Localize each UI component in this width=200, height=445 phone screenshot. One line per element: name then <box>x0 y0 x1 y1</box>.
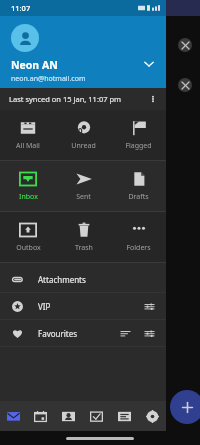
staticText: Sent <box>76 192 91 202</box>
staticText: Attachments <box>38 274 86 285</box>
button[interactable]: Filter options <box>141 325 157 341</box>
staticText: Trash <box>75 243 93 253</box>
button[interactable]: Neon AN <box>0 16 166 88</box>
button[interactable]: Calendar <box>27 401 54 431</box>
button[interactable]: Attachments <box>0 266 166 292</box>
button[interactable]: Sort <box>117 325 133 341</box>
button[interactable]: Settings <box>138 401 166 431</box>
button[interactable]: Unread <box>56 110 111 160</box>
button[interactable]: Tasks <box>82 401 110 431</box>
button[interactable]: Contacts <box>54 401 82 431</box>
staticText: Folders <box>126 243 151 253</box>
staticText: neon.an@hotmail.com <box>11 74 86 84</box>
button[interactable]: Switch account <box>138 53 160 75</box>
button[interactable]: Compose <box>170 390 200 424</box>
staticText: Inbox <box>19 192 38 202</box>
button[interactable]: Dismiss <box>178 38 192 52</box>
button[interactable]: Trash <box>56 212 111 262</box>
staticText: Neon AN <box>11 58 58 72</box>
button[interactable]: Drafts <box>111 161 166 211</box>
button[interactable]: Folders <box>111 212 166 262</box>
staticText: Drafts <box>128 192 149 202</box>
staticText: All Mail <box>16 141 40 151</box>
button[interactable]: Filter options <box>141 298 157 314</box>
staticText: Flagged <box>125 141 152 151</box>
button[interactable]: All Mail <box>0 110 56 160</box>
staticText: 11:07 <box>11 3 31 13</box>
staticText: Unread <box>71 141 96 151</box>
button[interactable]: Sent <box>56 161 111 211</box>
button[interactable]: Dismiss <box>178 78 192 92</box>
staticText: VIP <box>38 301 51 312</box>
button[interactable]: VIP <box>0 293 166 319</box>
button[interactable]: Flagged <box>111 110 166 160</box>
button[interactable]: Inbox <box>0 161 56 211</box>
staticText: 0 <box>78 125 83 136</box>
button[interactable]: More options <box>144 90 162 108</box>
staticText: Outbox <box>16 243 41 253</box>
staticText: Favourites <box>38 328 78 339</box>
staticText: Last synced on 15 Jan, 11:07 pm <box>9 94 122 104</box>
button[interactable]: Outbox <box>0 212 56 262</box>
button[interactable]: Favourites <box>0 320 166 346</box>
button[interactable]: Notes <box>110 401 138 431</box>
button[interactable]: Mail <box>0 401 27 431</box>
